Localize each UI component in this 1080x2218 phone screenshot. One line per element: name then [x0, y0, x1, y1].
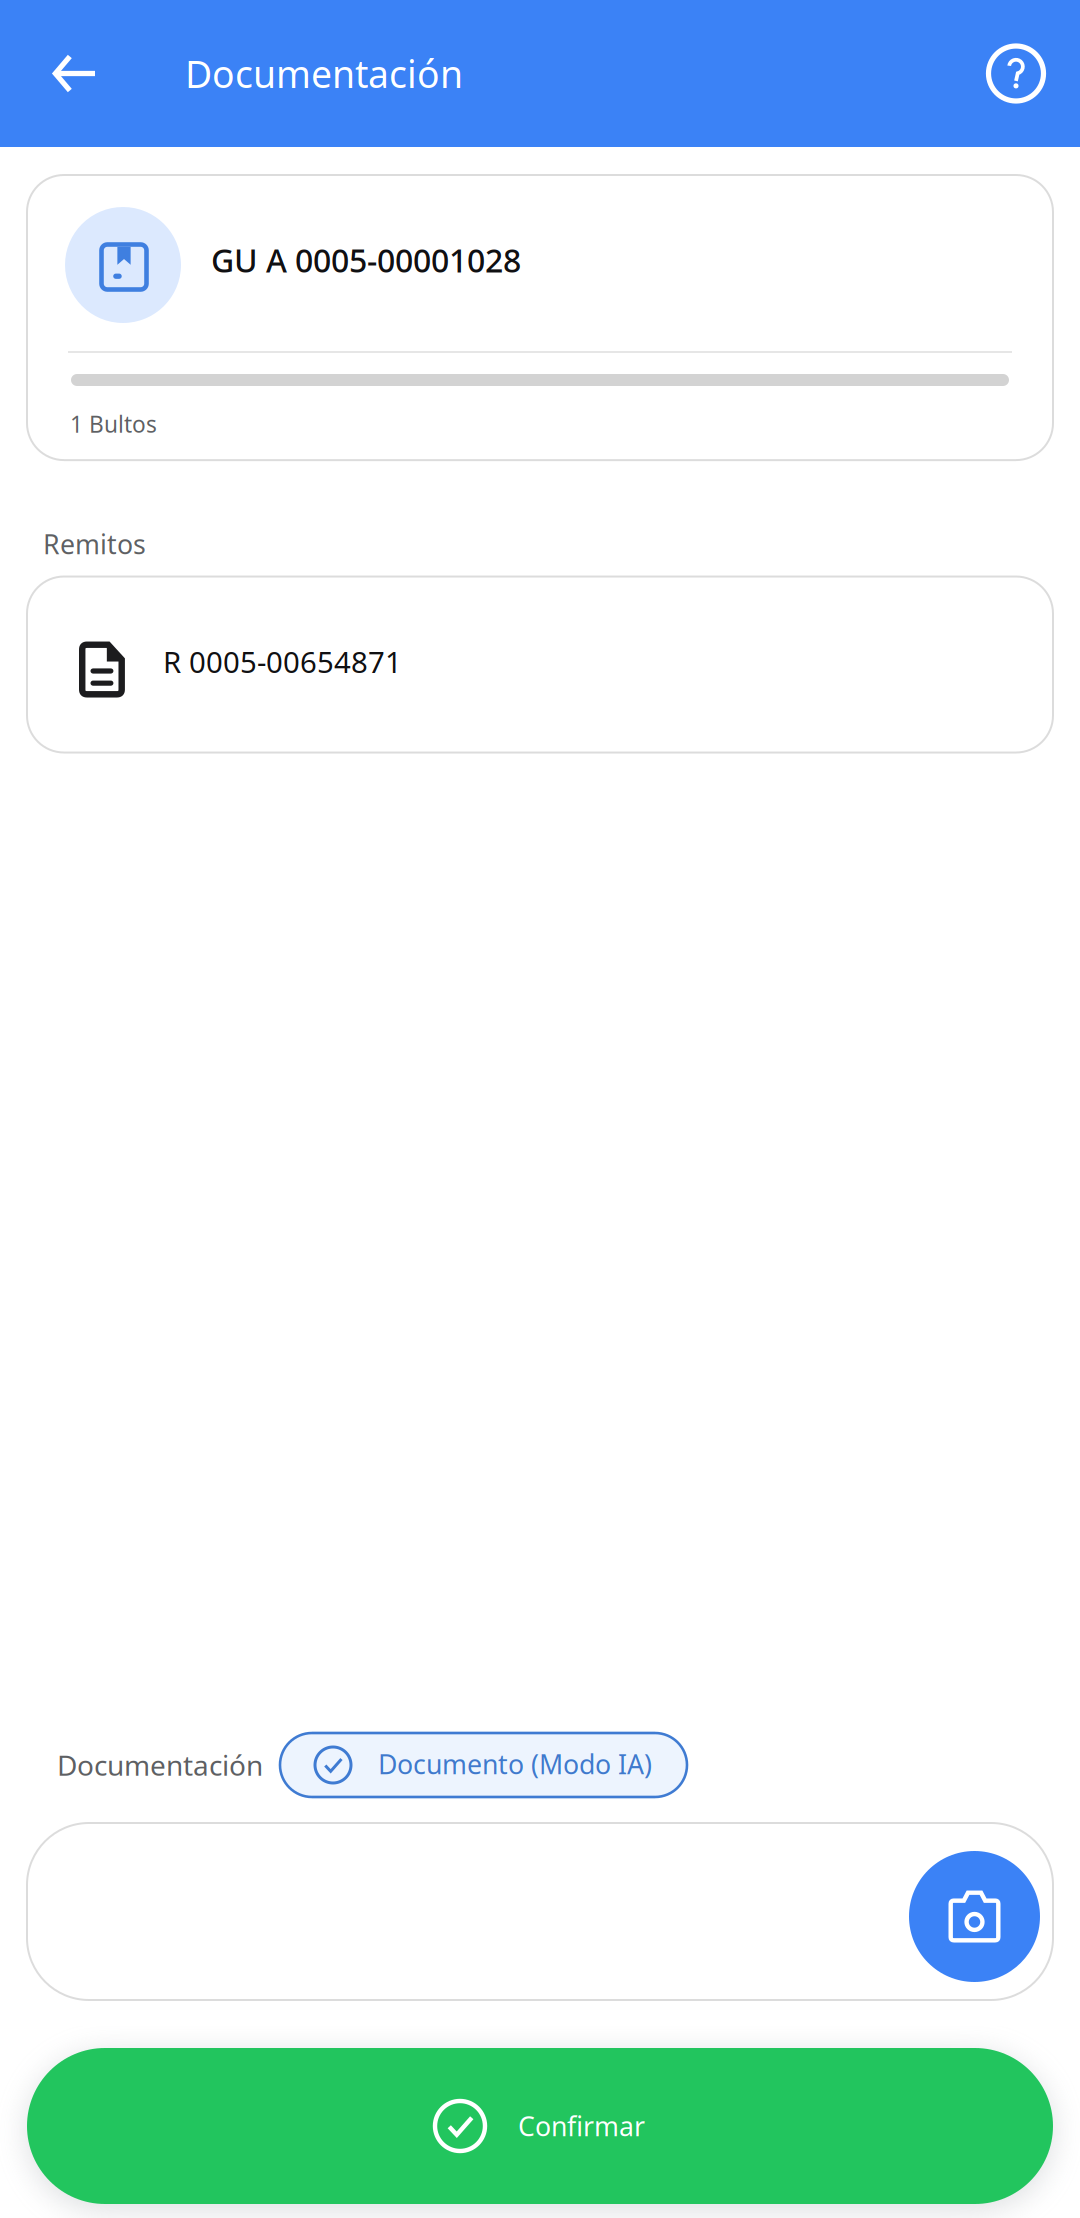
staticText: Documentación	[57, 1746, 263, 1784]
staticText: R 0005-00654871	[163, 642, 402, 681]
staticText: GU A 0005-00001028	[211, 239, 521, 281]
button[interactable]: R 0005-00654871	[27, 576, 1053, 752]
button[interactable]: Confirmar	[27, 2048, 1053, 2204]
button[interactable]: Take photo	[909, 1846, 1040, 1977]
button[interactable]: Documento (Modo IA)	[280, 1733, 687, 1797]
staticText: 1 Bultos	[70, 409, 157, 439]
staticText: Documento (Modo IA)	[378, 1746, 652, 1782]
staticText: Remitos	[43, 526, 146, 561]
staticText: Documentación	[185, 49, 463, 98]
staticText: Confirmar	[518, 2108, 645, 2144]
button[interactable]: Help	[970, 23, 1062, 123]
button[interactable]: Back	[28, 23, 120, 123]
